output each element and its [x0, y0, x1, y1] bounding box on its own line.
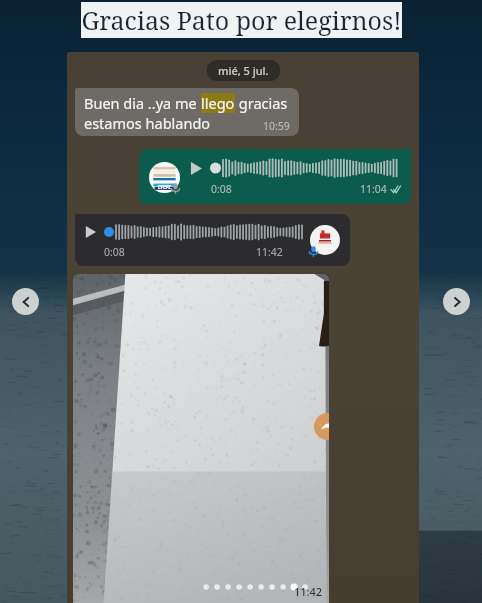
staticText: 10:59 — [263, 119, 290, 133]
staticText: 0:08 — [104, 245, 125, 259]
button[interactable]: Reenviar — [314, 413, 329, 440]
staticText: Buen dia ..ya me — [84, 93, 201, 113]
staticText: 11:42 — [256, 245, 283, 259]
staticText: mié, 5 jul. — [218, 63, 269, 78]
staticText: EFEPE — [158, 184, 171, 190]
button[interactable]: Reenviar — [73, 274, 329, 603]
staticText: Gracias Pato por elegirnos! — [81, 3, 402, 37]
button[interactable]: EFEPE — [139, 149, 411, 204]
button[interactable]: 0:08 — [75, 214, 350, 266]
button[interactable]: Siguiente — [443, 288, 470, 315]
button[interactable]: Anterior — [12, 288, 39, 315]
staticText: 0:08 — [211, 182, 232, 196]
button[interactable]: mié, 5 jul. — [207, 60, 280, 81]
staticText: 11:42 — [294, 584, 323, 599]
staticText: llego — [201, 93, 235, 113]
staticText: 11:04 — [360, 182, 387, 196]
button[interactable]: Buen dia ..ya me — [75, 88, 299, 136]
staticText: gracias — [235, 93, 288, 113]
staticText: estamos hablando — [84, 113, 211, 133]
